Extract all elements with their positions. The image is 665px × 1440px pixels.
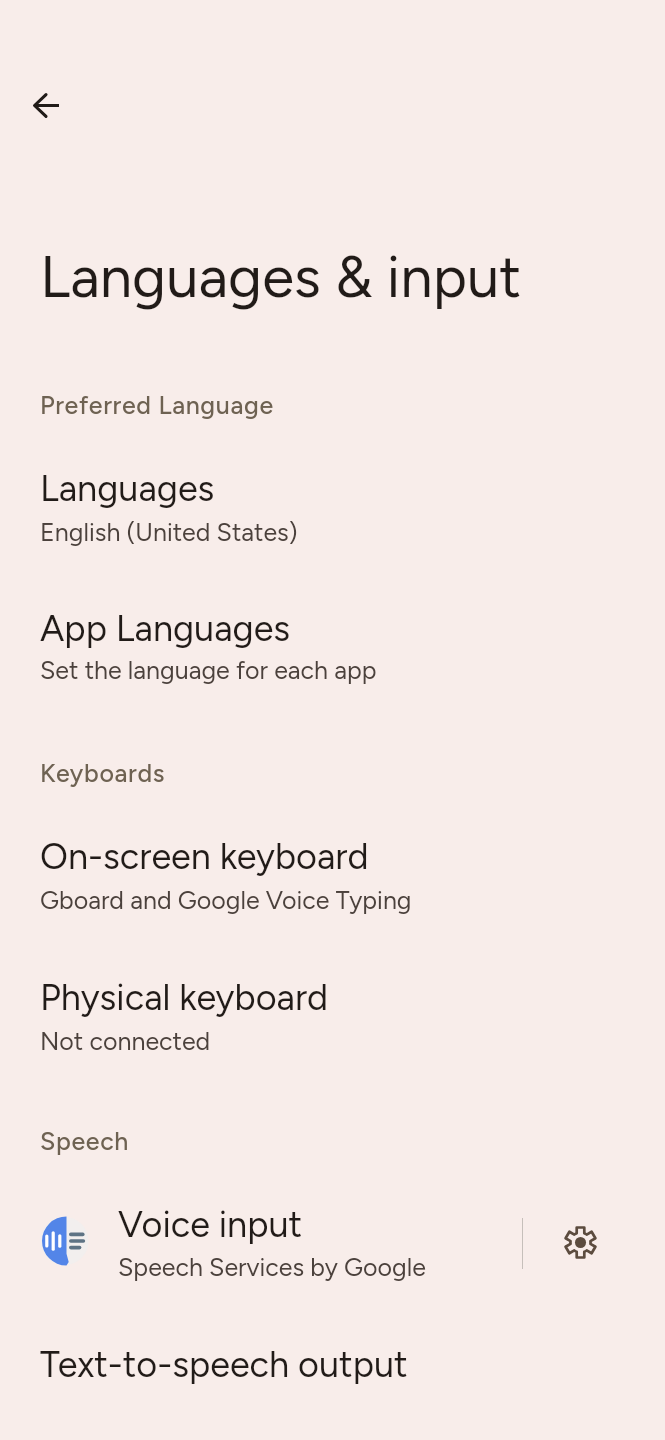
staticText: Gboard and Google Voice Typing [40, 885, 412, 915]
staticText: Voice input [118, 1203, 303, 1246]
button[interactable]: Voice input [0, 1185, 521, 1301]
staticText: Preferred Language [40, 390, 274, 420]
button[interactable]: Voice input settings [524, 1185, 636, 1301]
staticText: Speech Services by Google [118, 1252, 426, 1282]
button[interactable]: App Languages [0, 589, 665, 703]
button[interactable]: On-screen keyboard [0, 817, 665, 933]
button[interactable]: Languages [0, 449, 665, 565]
staticText: Set the language for each app [40, 655, 377, 685]
button[interactable]: Physical keyboard [0, 958, 665, 1074]
staticText: Languages & input [40, 242, 522, 312]
staticText: Text-to-speech output [40, 1343, 408, 1386]
staticText: On-screen keyboard [40, 835, 369, 878]
staticText: App Languages [40, 607, 291, 650]
button[interactable]: Navigate up [10, 69, 82, 141]
staticText: Keyboards [40, 758, 166, 788]
staticText: English (United States) [40, 517, 298, 547]
staticText: Languages [40, 467, 215, 510]
staticText: Speech [40, 1126, 130, 1156]
staticText: Not connected [40, 1026, 211, 1056]
button[interactable]: Text-to-speech output [0, 1325, 665, 1404]
staticText: Physical keyboard [40, 976, 329, 1019]
